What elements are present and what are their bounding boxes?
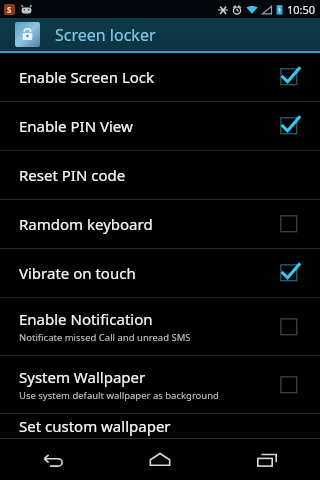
staticText: Set custom wallpaper (19, 416, 171, 436)
staticText: Enable Screen Lock (19, 67, 155, 87)
button[interactable]: Ramdom keyboard (0, 200, 320, 248)
button[interactable]: Home (106, 439, 213, 480)
staticText: Reset PIN code (19, 165, 126, 185)
staticText: Enable PIN View (19, 116, 133, 136)
button[interactable]: Set custom wallpaper (0, 414, 320, 438)
staticText: S (7, 4, 12, 15)
button[interactable]: System Wallpaper (0, 356, 320, 413)
button[interactable]: Screen locker (0, 18, 320, 51)
button[interactable]: Enable Screen Lock (0, 53, 320, 101)
staticText: Ramdom keyboard (19, 214, 153, 234)
button[interactable]: Enable Notification (0, 298, 320, 355)
staticText: Vibrate on touch (19, 263, 136, 283)
button[interactable]: Recent apps (213, 439, 320, 480)
button[interactable]: Vibrate on touch (0, 249, 320, 297)
staticText: 10:50 (287, 2, 316, 17)
staticText: Enable Notification (19, 309, 153, 329)
staticText: Screen locker (55, 24, 156, 46)
button[interactable]: Back (0, 439, 106, 480)
staticText: Notificate missed Call and unread SMS (19, 331, 191, 344)
button[interactable]: Reset PIN code (0, 151, 320, 199)
button[interactable]: Enable PIN View (0, 102, 320, 150)
staticText: System Wallpaper (19, 367, 146, 387)
staticText: Use system default wallpaper as backgrou… (19, 389, 219, 402)
